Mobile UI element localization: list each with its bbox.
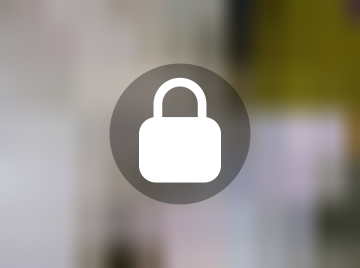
button[interactable]: Content locked	[109, 63, 250, 204]
